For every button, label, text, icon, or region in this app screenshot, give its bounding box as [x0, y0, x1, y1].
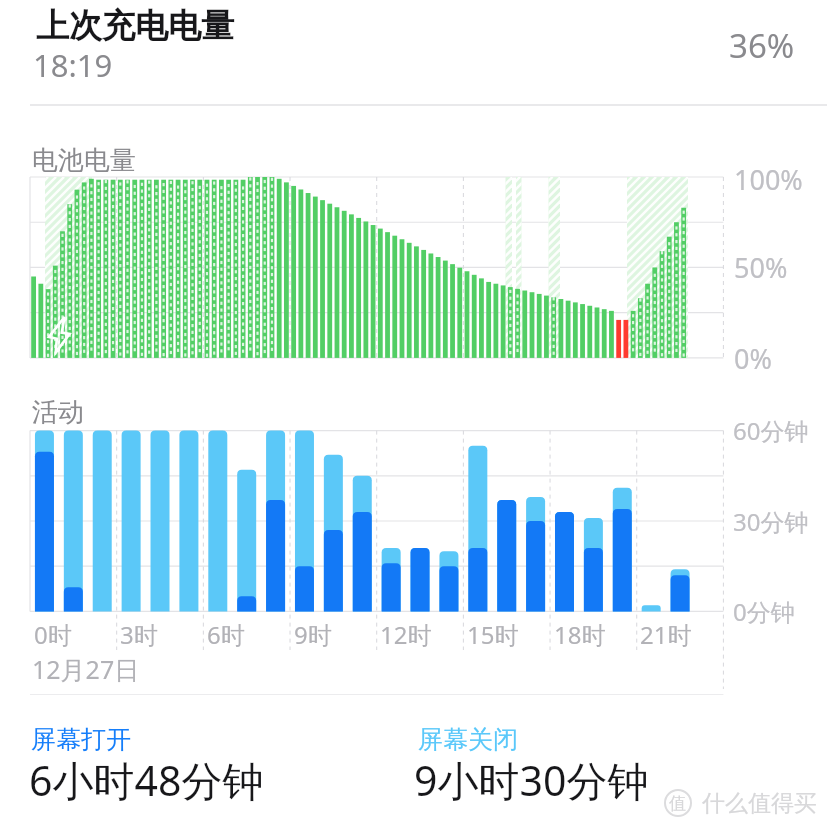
staticText: 18:19	[33, 44, 113, 86]
staticText: 什么值得买	[702, 789, 817, 818]
button[interactable]: 屏幕打开	[31, 724, 131, 755]
staticText: 21时	[640, 618, 692, 651]
staticText: 屏幕关闭	[418, 724, 518, 755]
button[interactable]: 屏幕关闭	[418, 724, 518, 755]
staticText: 30分钟	[733, 505, 809, 538]
staticText: 上次充电电量	[36, 5, 234, 47]
staticText: 屏幕打开	[31, 724, 131, 755]
staticText: 0时	[34, 618, 72, 651]
staticText: 活动	[32, 396, 84, 429]
staticText: 9时	[294, 618, 332, 651]
staticText: 15时	[467, 618, 519, 651]
staticText: 0分钟	[733, 595, 795, 628]
staticText: 50%	[734, 249, 788, 286]
staticText: 0%	[734, 340, 772, 377]
staticText: 6时	[207, 618, 245, 651]
staticText: 12月27日	[32, 652, 140, 686]
staticText: 36%	[729, 23, 795, 68]
staticText: 电池电量	[32, 144, 136, 177]
staticText: 12时	[380, 618, 432, 651]
staticText: 9小时30分钟	[414, 752, 649, 808]
staticText: 100%	[734, 161, 803, 198]
staticText: 3时	[120, 618, 158, 651]
staticText: 6小时48分钟	[29, 752, 264, 808]
staticText: 60分钟	[733, 414, 809, 447]
staticText: 18时	[554, 618, 606, 651]
staticText: 值	[669, 793, 686, 814]
